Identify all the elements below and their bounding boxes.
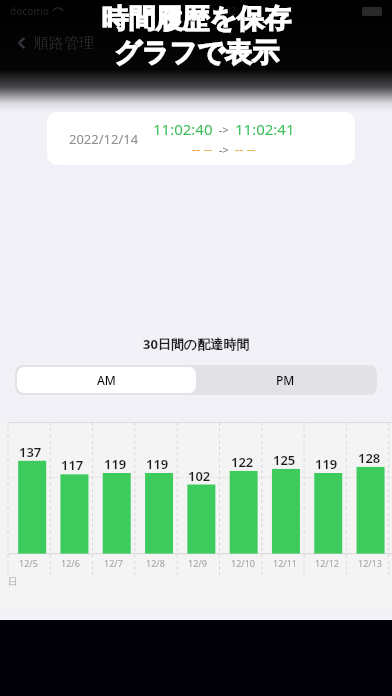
staticText: 125 — [273, 451, 296, 469]
staticText: -> — [213, 122, 235, 137]
staticText: 12/7 — [104, 557, 123, 569]
staticText: 時間履歴を保存 — [101, 2, 291, 36]
button[interactable]: 2022/12/14 — [47, 112, 355, 165]
staticText: 12/11 — [273, 557, 297, 569]
staticText: 12/10 — [231, 557, 255, 569]
staticText: 119 — [104, 455, 127, 473]
staticText: 順路管理 — [34, 34, 94, 53]
staticText: 日 — [8, 575, 18, 588]
staticText: 117 — [61, 456, 84, 474]
staticText: 11:02:40 — [153, 119, 213, 139]
staticText: グラフで表示 — [114, 36, 279, 70]
staticText: 12/6 — [61, 557, 80, 569]
staticText: 30日間の配達時間 — [143, 335, 250, 353]
button[interactable]: Back — [8, 26, 100, 60]
staticText: PM — [276, 372, 295, 388]
staticText: -- -- — [192, 140, 213, 158]
staticText: 11:02:41 — [235, 119, 295, 139]
staticText: 2022/12/14 — [69, 130, 139, 148]
staticText: AM — [97, 372, 116, 388]
staticText: 12/12 — [315, 557, 339, 569]
staticText: 137 — [19, 443, 42, 461]
staticText: 122 — [231, 453, 254, 471]
staticText: -> — [213, 142, 235, 157]
staticText: 12/8 — [146, 557, 165, 569]
button[interactable]: AM — [17, 367, 196, 393]
staticText: 102 — [188, 467, 211, 485]
staticText: 12/5 — [19, 557, 38, 569]
staticText: docomo — [10, 4, 49, 18]
staticText: -- -- — [235, 140, 256, 158]
button[interactable]: PM — [196, 367, 375, 393]
staticText: 12/9 — [188, 557, 207, 569]
staticText: 12/13 — [358, 557, 382, 569]
staticText: 128 — [358, 449, 381, 467]
staticText: 午前 11:02 — [188, 4, 237, 18]
staticText: 119 — [146, 455, 169, 473]
staticText: 119 — [315, 455, 338, 473]
